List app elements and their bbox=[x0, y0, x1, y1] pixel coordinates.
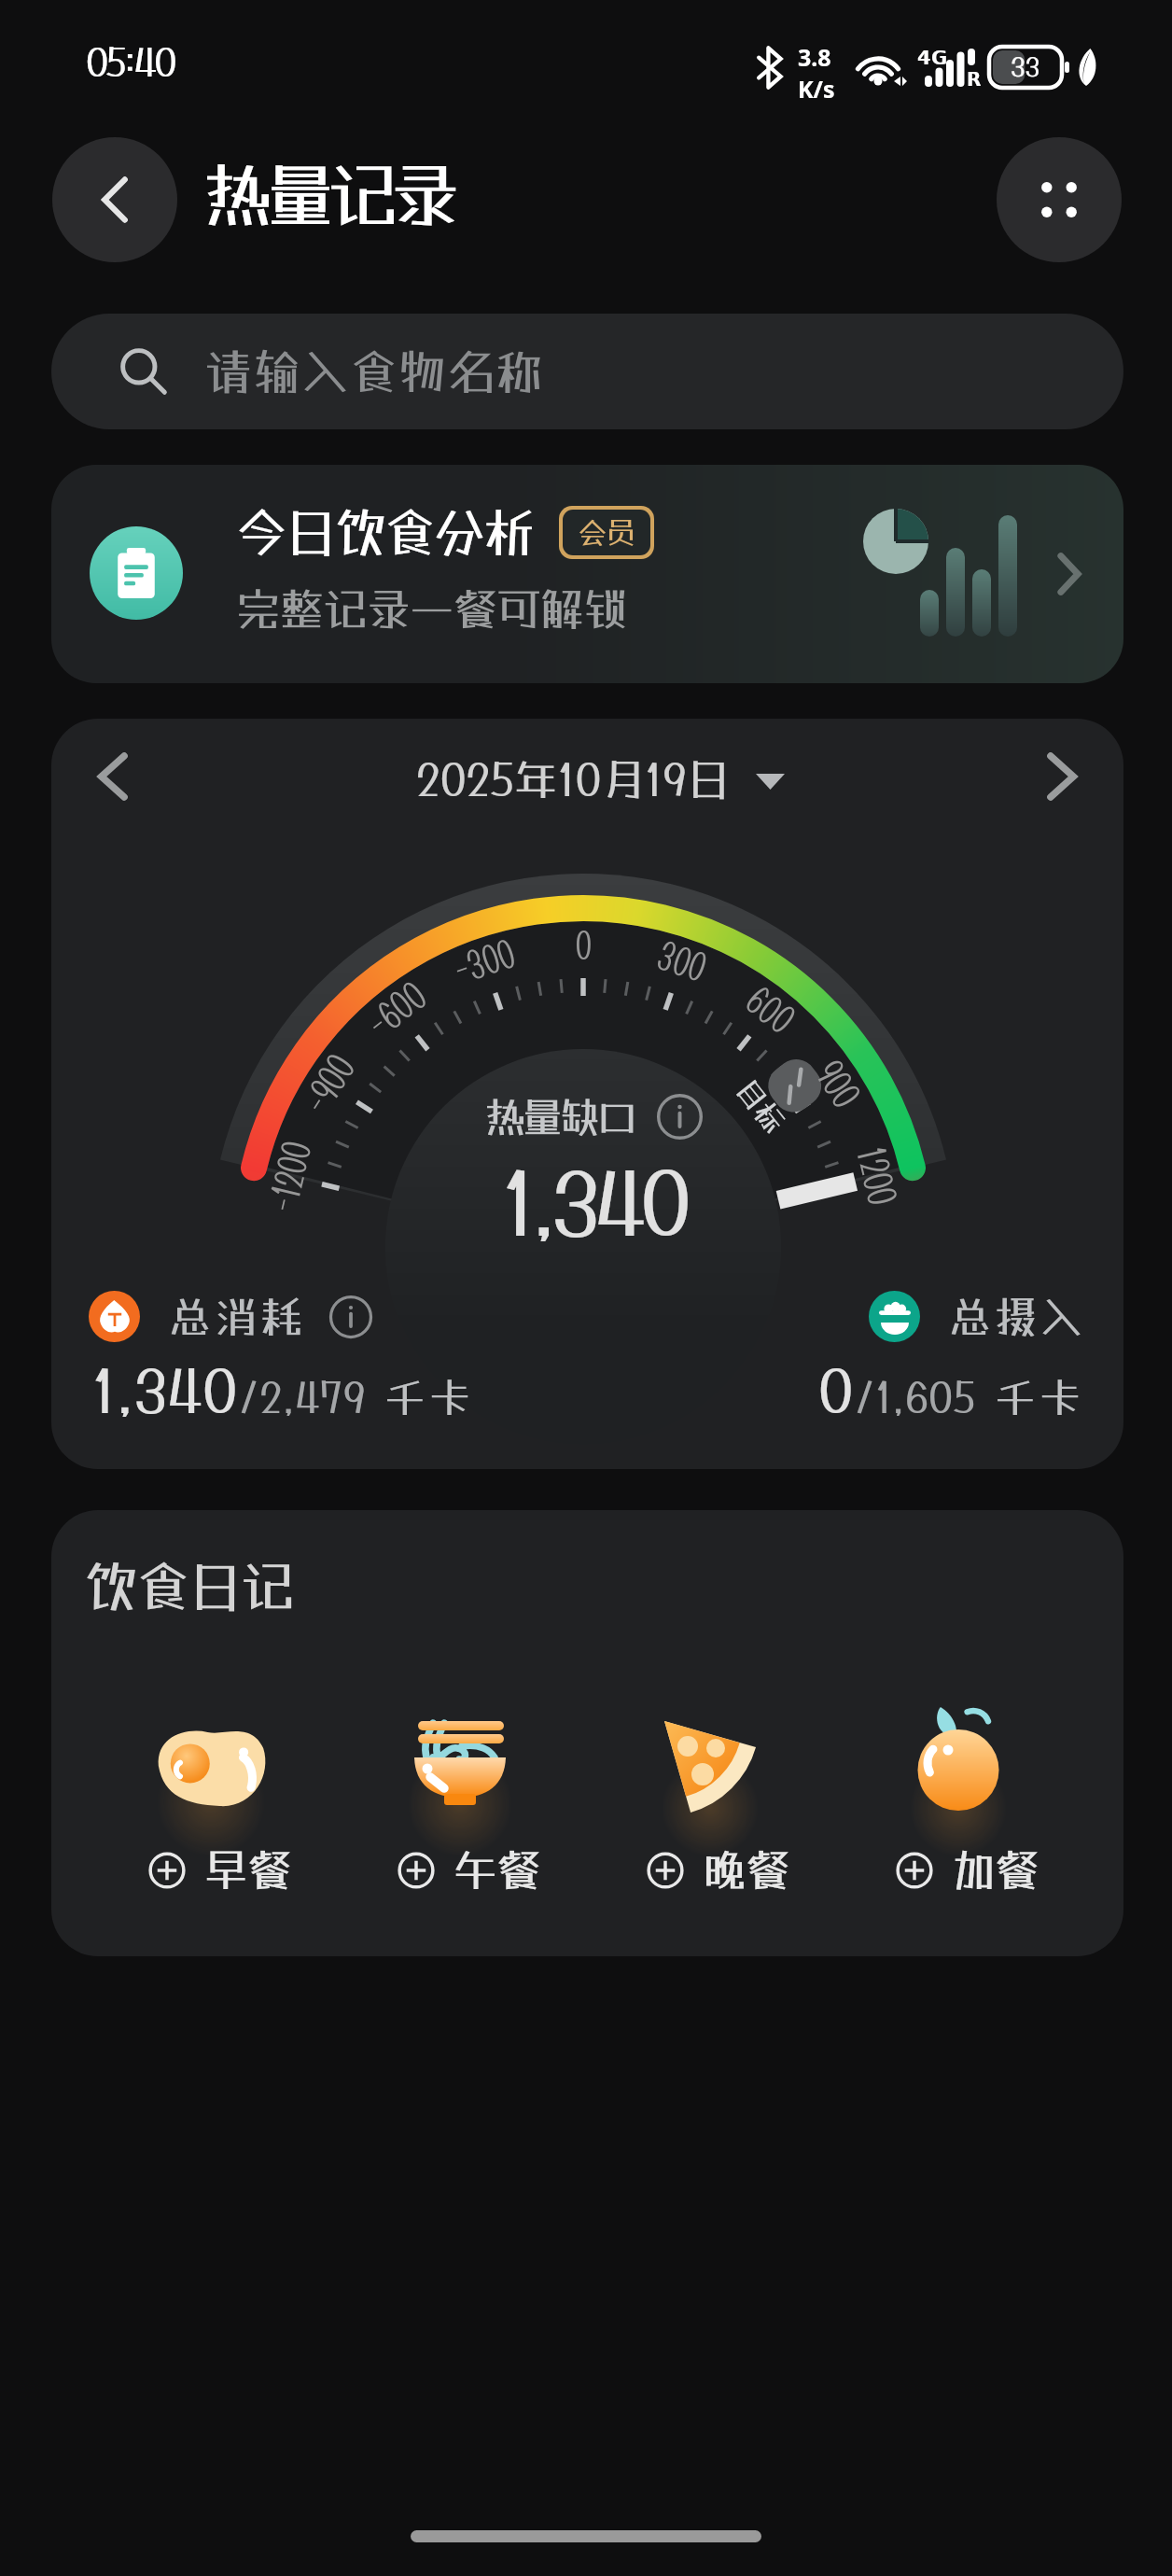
staticText: 加餐 bbox=[951, 1843, 1039, 1897]
button[interactable]: Info bbox=[655, 1092, 705, 1141]
staticText: 午餐 bbox=[453, 1843, 541, 1897]
staticText: 3.8 bbox=[798, 41, 831, 73]
staticText: 总摄入 bbox=[947, 1292, 1084, 1342]
staticText: K/s bbox=[798, 73, 835, 105]
button[interactable]: More options bbox=[997, 137, 1122, 262]
staticText: 1,340 bbox=[92, 1355, 238, 1424]
staticText: 晚餐 bbox=[702, 1843, 790, 1897]
staticText: /2,479 bbox=[238, 1373, 366, 1421]
button[interactable]: 晚餐 bbox=[594, 1703, 844, 1897]
staticText: 今日饮食分析 bbox=[237, 501, 534, 563]
staticText: 请输入食物名称 bbox=[204, 343, 545, 399]
staticText: /1,605 bbox=[854, 1373, 976, 1421]
staticText: 2025年10月19日 bbox=[416, 753, 731, 805]
button[interactable]: Open analysis bbox=[1058, 553, 1081, 595]
staticText: 05:40 bbox=[86, 39, 174, 84]
staticText: 会员 bbox=[578, 515, 636, 551]
button[interactable]: Previous day bbox=[83, 749, 137, 804]
button[interactable]: 请输入食物名称 bbox=[51, 314, 1123, 429]
button[interactable]: 加餐 bbox=[844, 1703, 1093, 1897]
button[interactable]: Next day bbox=[1038, 749, 1092, 804]
staticText: 0 bbox=[818, 1355, 854, 1424]
staticText: 饮食日记 bbox=[84, 1554, 294, 1617]
staticText: 千卡 bbox=[384, 1373, 474, 1421]
button[interactable]: 2025年10月19日 bbox=[416, 753, 785, 805]
button[interactable]: 今日饮食分析 bbox=[51, 465, 1123, 683]
button[interactable]: Back bbox=[52, 137, 177, 262]
staticText: 完整记录一餐可解锁 bbox=[236, 582, 627, 636]
staticText: 总消耗 bbox=[167, 1292, 304, 1342]
button[interactable]: Info bbox=[328, 1294, 374, 1340]
staticText: 33 bbox=[1011, 51, 1040, 82]
button[interactable]: 早餐 bbox=[96, 1703, 345, 1897]
staticText: 早餐 bbox=[203, 1843, 292, 1897]
staticText: 热量记录 bbox=[202, 152, 453, 236]
staticText: 1,340 bbox=[502, 1152, 686, 1253]
button[interactable]: 午餐 bbox=[345, 1703, 594, 1897]
staticText: 热量缺口 bbox=[484, 1092, 635, 1141]
staticText: 千卡 bbox=[995, 1373, 1084, 1421]
